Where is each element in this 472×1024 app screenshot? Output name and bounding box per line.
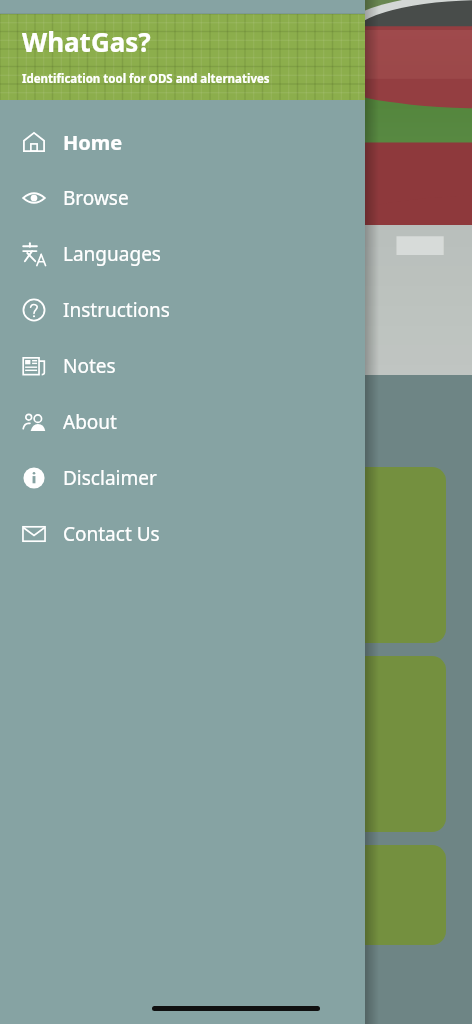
button[interactable]: Languages bbox=[0, 226, 365, 282]
button[interactable]: Search by HS code bbox=[22, 467, 446, 643]
button[interactable]: Instructions bbox=[0, 282, 365, 338]
staticText: Browse bbox=[63, 185, 129, 211]
button[interactable]: Disclaimer bbox=[0, 450, 365, 506]
button[interactable]: Home bbox=[0, 114, 365, 170]
button[interactable]: Browse bbox=[0, 170, 365, 226]
staticText: Notes bbox=[63, 353, 116, 379]
staticText: WhatGas? bbox=[150, 60, 291, 101]
staticText: Home bbox=[63, 129, 123, 156]
staticText: Identification tool for ODS and alternat… bbox=[22, 71, 270, 87]
staticText: Disclaimer bbox=[63, 465, 157, 491]
button[interactable]: About bbox=[0, 394, 365, 450]
staticText: Search by HS code bbox=[48, 529, 170, 582]
button[interactable]: Contact Us bbox=[0, 506, 365, 562]
staticText: About bbox=[63, 409, 117, 435]
staticText: Languages bbox=[63, 241, 161, 267]
button[interactable]: Search by chemical name bbox=[22, 656, 446, 832]
staticText: WhatGas? bbox=[22, 24, 151, 59]
button[interactable]: Browse bbox=[22, 845, 446, 945]
button[interactable]: Notes bbox=[0, 338, 365, 394]
staticText: Instructions bbox=[63, 297, 170, 323]
staticText: Contact Us bbox=[63, 521, 160, 547]
